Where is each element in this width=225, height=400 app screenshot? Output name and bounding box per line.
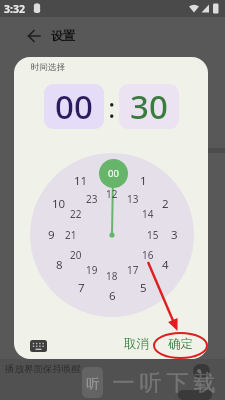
- staticText: 一听下载: [110, 369, 218, 397]
- button[interactable]: 16: [138, 247, 158, 263]
- staticText: 9: [48, 227, 55, 243]
- staticText: 3: [171, 227, 178, 243]
- button[interactable]: 23: [82, 191, 102, 207]
- staticText: :: [108, 88, 116, 126]
- staticText: 时间选择: [31, 62, 65, 73]
- staticText: 2: [162, 196, 169, 212]
- button[interactable]: 4: [155, 257, 175, 273]
- staticText: 8: [56, 257, 63, 273]
- button[interactable]: 15: [143, 227, 163, 243]
- staticText: 13: [127, 192, 139, 206]
- staticText: 21: [65, 228, 77, 242]
- staticText: 6: [109, 288, 116, 304]
- staticText: 17: [127, 263, 139, 277]
- staticText: 12: [106, 187, 118, 201]
- button[interactable]: 9: [41, 227, 61, 243]
- button[interactable]: 7: [71, 280, 91, 296]
- button[interactable]: 21: [61, 227, 81, 243]
- button[interactable]: 10: [49, 196, 69, 212]
- button[interactable]: 2: [155, 196, 175, 212]
- button[interactable]: 22: [66, 206, 86, 222]
- staticText: 22: [70, 207, 82, 221]
- button[interactable]: 18: [102, 268, 122, 284]
- button[interactable]: 13: [123, 191, 143, 207]
- button[interactable]: 1: [133, 173, 153, 189]
- staticText: 15: [147, 228, 159, 242]
- staticText: 听: [86, 375, 99, 391]
- button[interactable]: [30, 153, 194, 317]
- button[interactable]: 取消: [116, 333, 156, 355]
- button[interactable]: 20: [66, 247, 86, 263]
- staticText: 播放界面保持唤醒: [5, 363, 81, 375]
- staticText: 1: [140, 173, 147, 189]
- button[interactable]: 14: [138, 206, 158, 222]
- staticText: 确定: [168, 336, 193, 352]
- staticText: 20: [70, 248, 82, 262]
- button[interactable]: [30, 340, 48, 353]
- staticText: 3:32: [4, 2, 25, 16]
- button[interactable]: 确定: [160, 333, 200, 355]
- button[interactable]: 19: [82, 262, 102, 278]
- button[interactable]: 11: [71, 173, 91, 189]
- staticText: 30: [130, 84, 168, 129]
- staticText: 00: [55, 84, 93, 129]
- staticText: 11: [74, 173, 88, 189]
- button[interactable]: 00: [44, 84, 104, 129]
- button[interactable]: 17: [123, 262, 143, 278]
- button[interactable]: 5: [133, 280, 153, 296]
- staticText: 16: [142, 248, 154, 262]
- staticText: 10: [52, 196, 66, 212]
- button[interactable]: 30: [119, 84, 179, 129]
- staticText: 00: [108, 167, 119, 180]
- staticText: 7: [78, 280, 85, 296]
- button[interactable]: 6: [102, 288, 122, 304]
- staticText: 23: [86, 192, 98, 206]
- button[interactable]: 8: [49, 257, 69, 273]
- staticText: 18: [106, 269, 118, 283]
- button[interactable]: 3: [164, 227, 184, 243]
- staticText: 4: [162, 257, 169, 273]
- staticText: 设置: [51, 28, 75, 43]
- button[interactable]: 12: [102, 186, 122, 202]
- staticText: 取消: [124, 336, 149, 352]
- staticText: 19: [86, 263, 98, 277]
- staticText: 14: [142, 207, 154, 221]
- staticText: 5: [140, 280, 147, 296]
